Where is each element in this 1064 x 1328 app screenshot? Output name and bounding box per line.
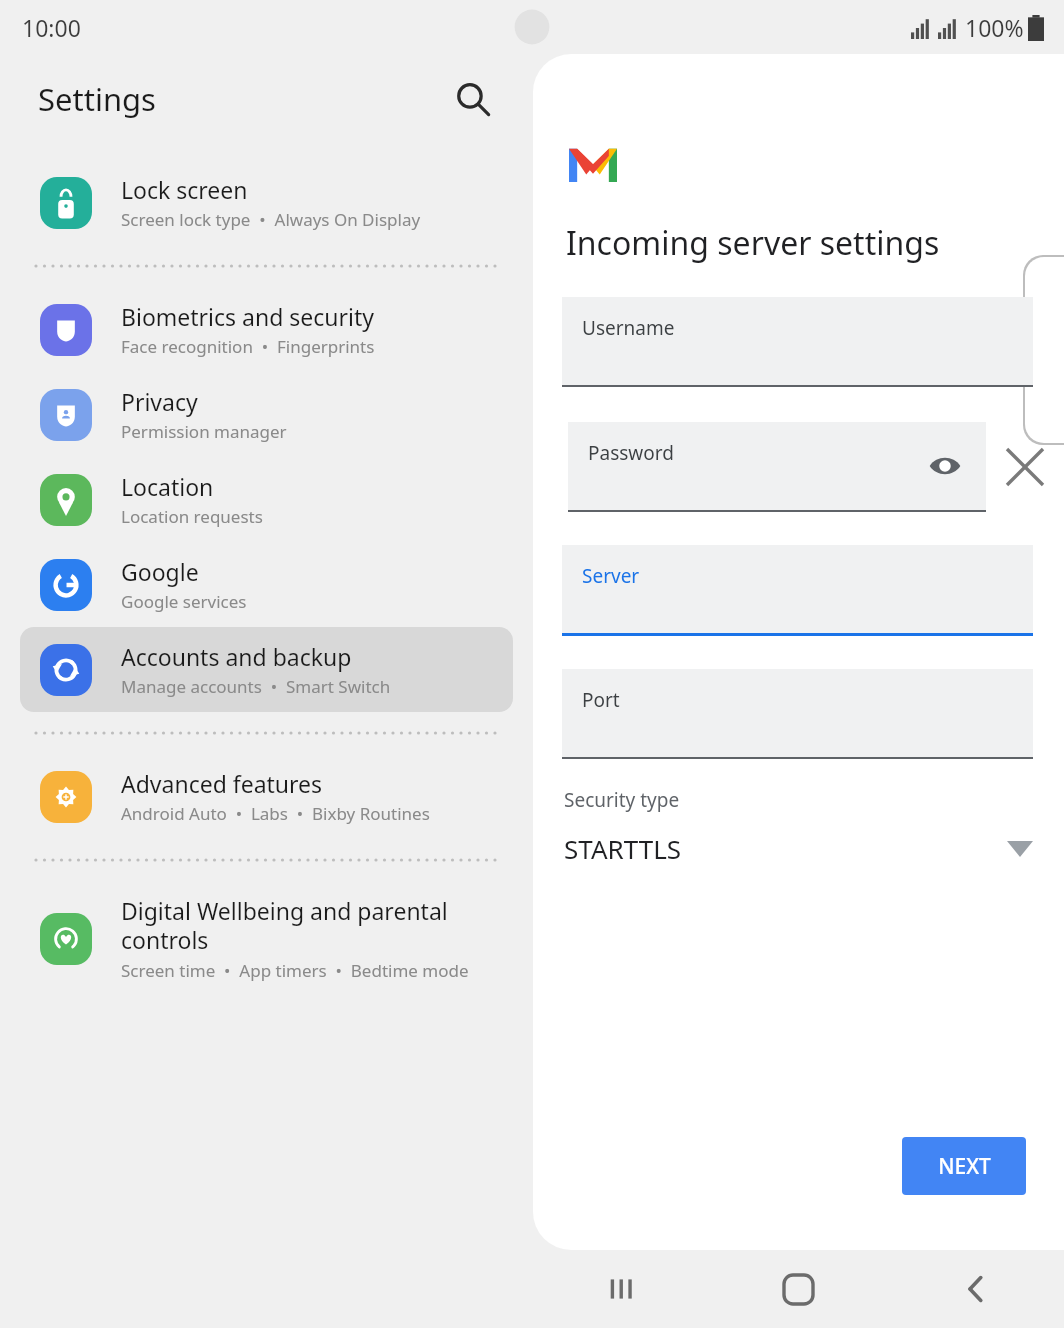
staticText: Password xyxy=(588,440,674,466)
staticText: Settings xyxy=(38,78,156,120)
staticText: Location xyxy=(121,471,214,502)
staticText: Screen lock type • Always On Display xyxy=(121,208,421,231)
staticText: Security type xyxy=(564,787,680,813)
staticText: 10:00 xyxy=(22,12,81,43)
staticText: Advanced features xyxy=(121,768,323,799)
staticText: Google xyxy=(121,556,199,587)
staticText: Manage accounts • Smart Switch xyxy=(121,675,391,698)
staticText: Accounts and backup xyxy=(121,641,352,672)
staticText: Port xyxy=(582,687,620,713)
staticText: Permission manager xyxy=(121,420,287,443)
staticText: STARTTLS xyxy=(564,831,682,866)
button[interactable]: Digital Wellbeing and parental controls xyxy=(20,881,513,996)
staticText: Google services xyxy=(121,590,247,613)
button[interactable]: Search xyxy=(441,67,505,131)
staticText: Screen time • App timers • Bedtime mode xyxy=(121,959,469,982)
staticText: Incoming server settings xyxy=(566,221,940,265)
button[interactable]: Privacy xyxy=(20,372,513,457)
button[interactable]: Accounts and backup xyxy=(20,627,513,712)
button[interactable]: Google xyxy=(20,542,513,627)
button[interactable]: NEXT xyxy=(902,1137,1026,1195)
staticText: Privacy xyxy=(121,386,198,417)
staticText: 100% xyxy=(965,12,1024,43)
button[interactable]: Location xyxy=(20,457,513,542)
button[interactable]: Show password xyxy=(918,439,972,493)
staticText: Face recognition • Fingerprints xyxy=(121,335,375,358)
staticText: Location requests xyxy=(121,505,263,528)
button[interactable]: Lock screen xyxy=(20,160,513,245)
button[interactable]: Recent apps xyxy=(533,1250,710,1328)
button[interactable]: STARTTLS xyxy=(533,831,1064,866)
button[interactable]: Home xyxy=(710,1250,887,1328)
staticText: Android Auto • Labs • Bixby Routines xyxy=(121,802,430,825)
button[interactable]: Back xyxy=(887,1250,1064,1328)
button[interactable]: Clear password xyxy=(998,440,1052,494)
staticText: Biometrics and security xyxy=(121,301,375,332)
staticText: NEXT xyxy=(938,1152,991,1181)
staticText: Lock screen xyxy=(121,174,248,205)
staticText: Username xyxy=(582,315,675,341)
staticText: Digital Wellbeing and parental controls xyxy=(121,895,448,956)
staticText: Server xyxy=(582,563,640,589)
button[interactable]: Biometrics and security xyxy=(20,287,513,372)
button[interactable]: Advanced features xyxy=(20,754,513,839)
